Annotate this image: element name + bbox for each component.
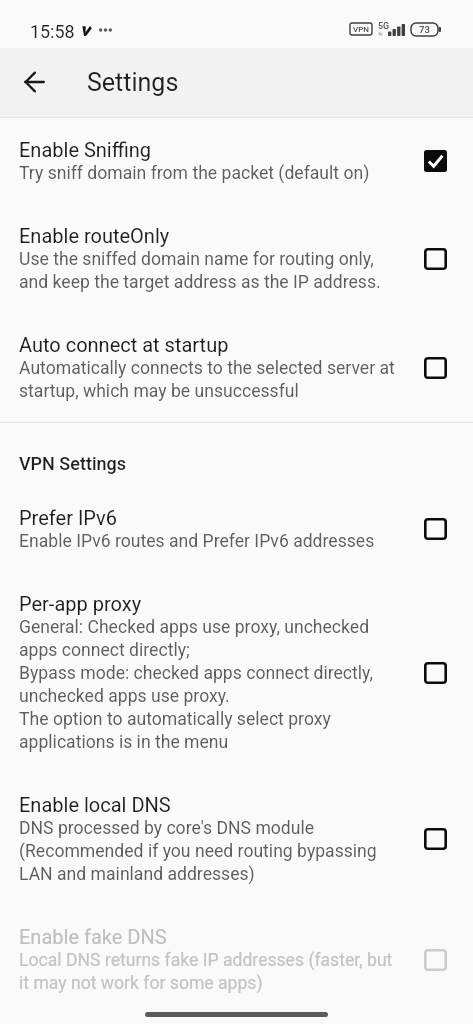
staticText: DNS processed by core's DNS module (Reco… xyxy=(19,816,401,885)
button[interactable]: Enable routeOnly xyxy=(0,204,473,313)
button[interactable]: Enable local DNS xyxy=(0,773,473,905)
button[interactable]: Per-app proxy xyxy=(0,572,473,773)
staticText: VPN xyxy=(353,25,369,34)
staticText: 5G xyxy=(378,21,390,32)
button[interactable]: Enable Sniffing xyxy=(0,118,473,204)
staticText: Use the sniffed domain name for routing … xyxy=(19,247,401,293)
button[interactable]: Navigate up xyxy=(10,59,58,107)
staticText: Enable Sniffing xyxy=(19,138,152,161)
staticText: Enable local DNS xyxy=(19,793,171,816)
staticText: VPN Settings xyxy=(19,453,126,474)
staticText: Enable fake DNS xyxy=(19,925,167,948)
button[interactable]: Prefer IPv6 xyxy=(0,486,473,572)
staticText: Settings xyxy=(87,68,179,97)
staticText: Per-app proxy xyxy=(19,592,142,615)
staticText: Try sniff domain from the packet (defaul… xyxy=(19,161,370,184)
staticText: Automatically connects to the selected s… xyxy=(19,356,401,402)
staticText: General: Checked apps use proxy, uncheck… xyxy=(19,615,401,753)
button[interactable]: Enable fake DNS xyxy=(0,905,473,1014)
button[interactable]: Auto connect at startup xyxy=(0,313,473,422)
staticText: 73 xyxy=(419,24,430,35)
staticText: 15:58 xyxy=(30,21,75,42)
staticText: Enable routeOnly xyxy=(19,224,170,247)
staticText: Auto connect at startup xyxy=(19,333,229,356)
staticText: Prefer IPv6 xyxy=(19,506,118,529)
staticText: Enable IPv6 routes and Prefer IPv6 addre… xyxy=(19,529,375,552)
staticText: Local DNS returns fake IP addresses (fas… xyxy=(19,948,401,994)
staticText: 4г xyxy=(378,31,383,37)
